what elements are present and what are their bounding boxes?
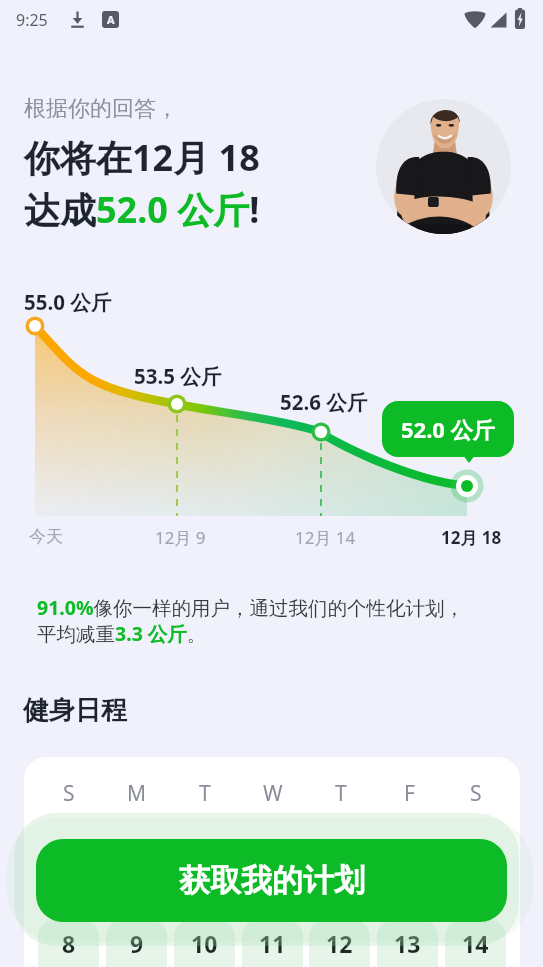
staticText: 12: [326, 928, 353, 959]
staticText: 55.0 公斤: [24, 288, 112, 316]
staticText: 12月 14: [295, 526, 356, 549]
staticText: S: [470, 779, 482, 808]
button[interactable]: 获取我的计划: [36, 839, 507, 922]
button[interactable]: 12: [309, 920, 370, 967]
staticText: F: [404, 779, 415, 808]
button[interactable]: 13: [377, 920, 438, 967]
staticText: 获取我的计划: [179, 861, 365, 900]
staticText: 13: [394, 928, 421, 959]
staticText: 12月 18: [441, 526, 502, 549]
staticText: 根据你的回答，: [24, 95, 178, 123]
button[interactable]: 9: [106, 920, 167, 967]
staticText: 8: [62, 928, 76, 959]
staticText: 53.5 公斤: [134, 362, 222, 390]
staticText: S: [63, 779, 75, 808]
staticText: 91.0%像你一样的用户，通过我们的个性化计划， 平均减重3.3 公斤。: [37, 594, 497, 647]
button[interactable]: 10: [174, 920, 235, 967]
staticText: 12月 9: [155, 526, 206, 549]
staticText: W: [263, 779, 283, 808]
staticText: 11: [259, 928, 286, 959]
staticText: 10: [191, 928, 218, 959]
button[interactable]: 11: [242, 920, 303, 967]
staticText: 52.6 公斤: [280, 388, 368, 416]
staticText: 52.0 公斤: [401, 414, 495, 444]
staticText: 今天: [29, 526, 63, 547]
staticText: 14: [462, 928, 489, 959]
staticText: 9:25: [16, 9, 48, 31]
other: 个人头像: [376, 99, 511, 234]
button[interactable]: 14: [445, 920, 506, 967]
button[interactable]: 8: [38, 920, 99, 967]
staticText: M: [127, 779, 147, 808]
staticText: 健身日程: [23, 694, 127, 727]
staticText: T: [335, 779, 347, 808]
staticText: T: [199, 779, 211, 808]
staticText: 9: [130, 928, 144, 959]
staticText: 你将在12月 18 达成52.0 公斤!: [24, 133, 260, 234]
staticText: A: [107, 12, 115, 27]
